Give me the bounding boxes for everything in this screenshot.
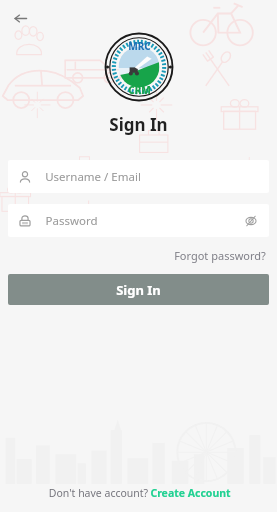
staticText: Sign In bbox=[116, 281, 161, 299]
staticText: MRC bbox=[128, 39, 151, 53]
staticText: Sign In bbox=[109, 113, 168, 136]
button[interactable]: Create Account bbox=[150, 486, 231, 500]
button[interactable]: Back bbox=[6, 4, 34, 32]
button[interactable]: Password bbox=[8, 204, 269, 237]
staticText: CRM bbox=[128, 83, 151, 97]
staticText: Create Account bbox=[150, 486, 231, 500]
button[interactable]: Username / Email bbox=[8, 160, 269, 193]
staticText: Forgot password? bbox=[174, 248, 266, 263]
button[interactable]: Sign In bbox=[8, 274, 269, 305]
staticText: Don't have account? bbox=[47, 486, 150, 500]
button[interactable]: Forgot password? bbox=[172, 246, 268, 265]
staticText: Username / Email bbox=[45, 169, 141, 185]
staticText: Password bbox=[45, 213, 98, 229]
button[interactable]: Show password bbox=[241, 211, 261, 231]
